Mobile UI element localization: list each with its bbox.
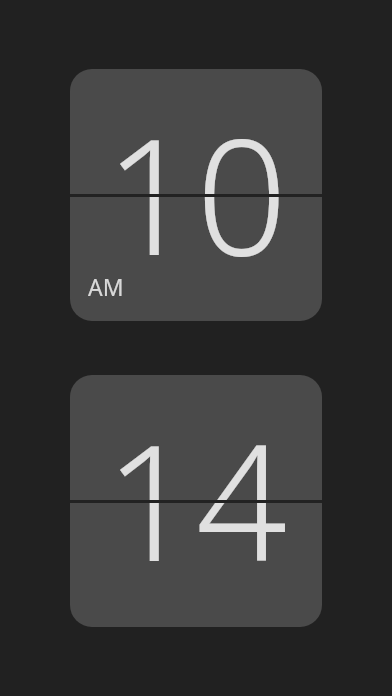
staticText: 10 [70, 84, 322, 302]
button[interactable]: Minutes 14 [70, 375, 322, 627]
staticText: 14 [70, 390, 322, 608]
staticText: AM [88, 271, 124, 302]
button[interactable]: Hours 10 AM [70, 69, 322, 321]
